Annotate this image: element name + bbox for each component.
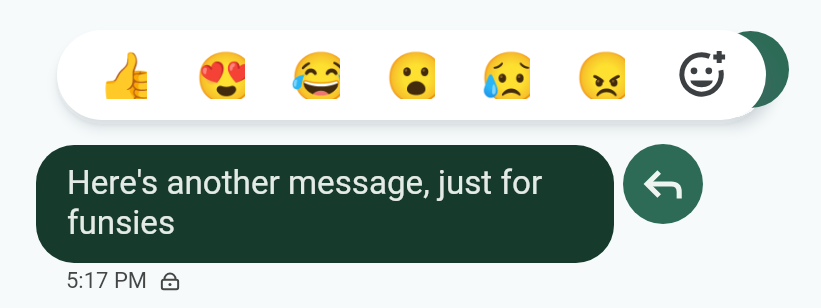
button[interactable]: React surprised xyxy=(385,49,435,99)
button[interactable]: React sad xyxy=(480,49,530,99)
button[interactable]: Reply xyxy=(623,144,703,224)
staticText: 😂 xyxy=(290,49,340,99)
button[interactable]: Add reaction xyxy=(676,49,732,105)
staticText: 👍 xyxy=(97,49,147,99)
button[interactable]: More reactions xyxy=(712,31,789,108)
other: End-to-end encrypted xyxy=(159,270,181,292)
button[interactable]: React thumbs up xyxy=(97,49,147,99)
staticText: 😮 xyxy=(385,49,435,99)
button[interactable]: Here's another message, just for funsies xyxy=(36,145,614,263)
staticText: 5:17 PM xyxy=(66,268,147,294)
staticText: 😠 xyxy=(575,49,625,99)
staticText: Here's another message, just for funsies xyxy=(67,163,587,242)
button[interactable]: React angry xyxy=(575,49,625,99)
staticText: 😍 xyxy=(195,49,245,99)
staticText: 😥 xyxy=(480,49,530,99)
button[interactable]: React heart eyes xyxy=(195,49,245,99)
button[interactable]: React laughing xyxy=(290,49,340,99)
